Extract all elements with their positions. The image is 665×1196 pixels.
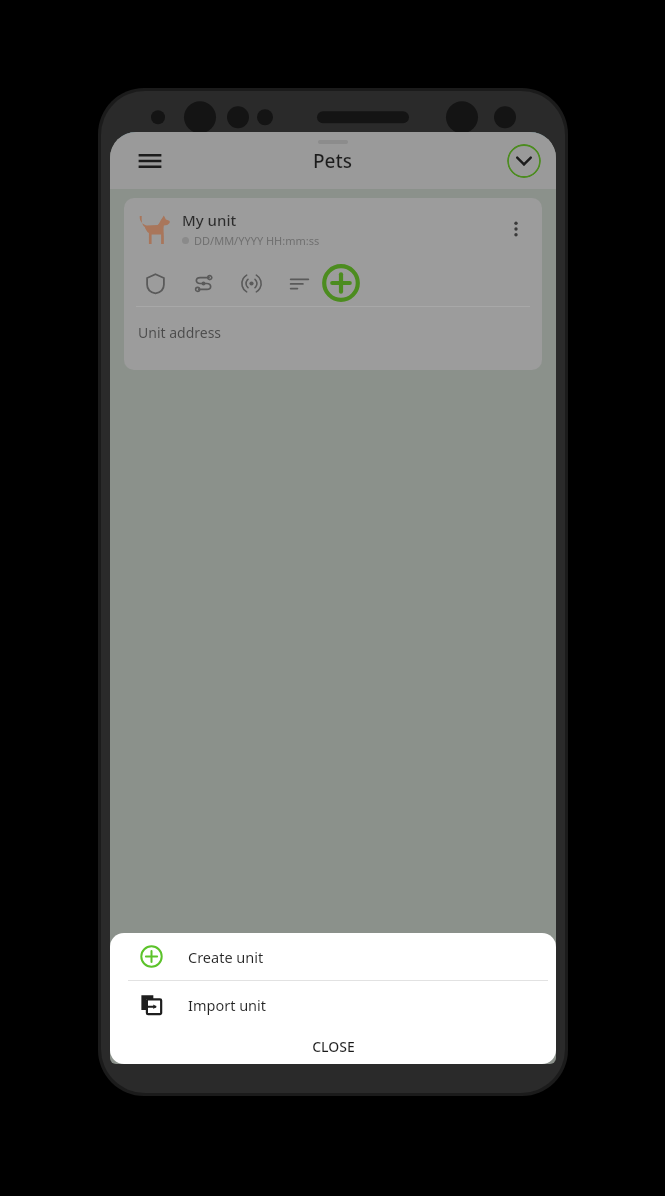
- button[interactable]: Import unit: [110, 981, 556, 1028]
- staticText: Unit address: [138, 323, 222, 342]
- staticText: My unit: [182, 210, 237, 230]
- staticText: CLOSE: [312, 1037, 355, 1056]
- staticText: Create unit: [188, 947, 264, 967]
- staticText: Import unit: [188, 995, 267, 1015]
- button[interactable]: CLOSE: [110, 1028, 556, 1064]
- button[interactable]: Add: [320, 262, 362, 304]
- button[interactable]: Security: [138, 266, 172, 300]
- button[interactable]: Expand: [507, 144, 541, 178]
- button[interactable]: Open navigation menu: [126, 137, 174, 185]
- button[interactable]: Signal: [234, 266, 268, 300]
- button[interactable]: Create unit: [110, 933, 556, 980]
- button[interactable]: My unit: [124, 198, 542, 370]
- staticText: DD/MM/YYYY HH:mm:ss: [194, 233, 320, 248]
- staticText: Pets: [313, 148, 353, 174]
- button[interactable]: Sort: [282, 266, 316, 300]
- button[interactable]: More options: [498, 211, 534, 247]
- button[interactable]: Route: [186, 266, 220, 300]
